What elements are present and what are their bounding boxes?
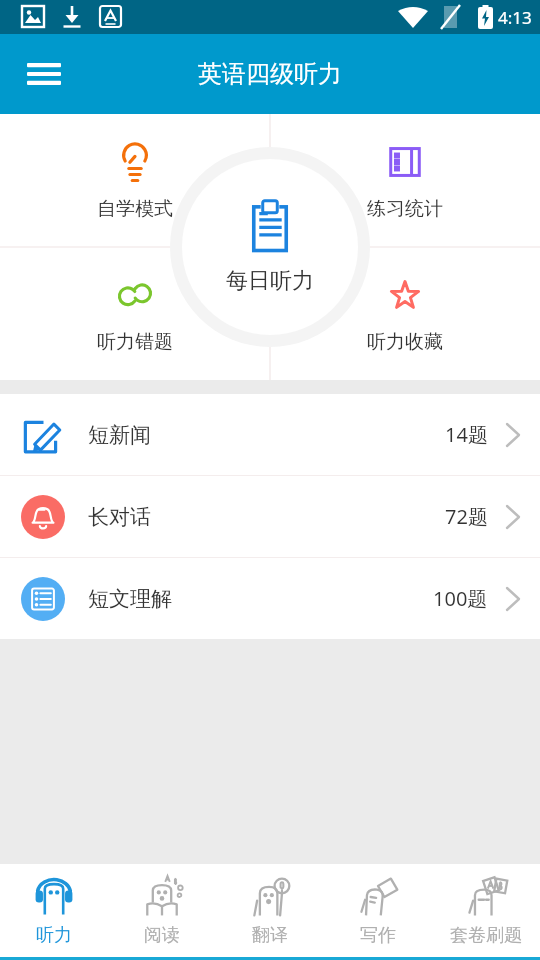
staticText: 英语四级听力	[198, 59, 342, 89]
button[interactable]: 阅读	[108, 864, 216, 957]
staticText: 长对话	[88, 504, 151, 530]
staticText: 自学模式	[97, 197, 173, 221]
staticText: 套卷刷题	[450, 924, 522, 947]
staticText: 听力	[36, 924, 72, 947]
button[interactable]: 自学模式	[0, 114, 270, 247]
button[interactable]: 听力错题	[0, 247, 270, 380]
button[interactable]: 听力	[0, 864, 108, 957]
staticText: 100题	[433, 585, 488, 612]
button[interactable]: 练习统计	[270, 114, 540, 247]
button[interactable]: 短文理解	[0, 558, 540, 639]
button[interactable]: 每日听力	[170, 147, 370, 347]
staticText: 每日听力	[226, 267, 314, 295]
staticText: 4:13	[498, 6, 532, 29]
button[interactable]: 写作	[324, 864, 432, 957]
staticText: 72题	[445, 503, 488, 530]
staticText: 翻译	[252, 924, 288, 947]
staticText: 14题	[445, 421, 488, 448]
staticText: 练习统计	[367, 197, 443, 221]
button[interactable]: 长对话	[0, 476, 540, 557]
staticText: 听力收藏	[367, 330, 443, 354]
staticText: 阅读	[144, 924, 180, 947]
staticText: 短新闻	[88, 422, 151, 448]
button[interactable]: 短新闻	[0, 394, 540, 475]
button[interactable]: 套卷刷题	[432, 864, 540, 957]
staticText: 写作	[360, 924, 396, 947]
staticText: 听力错题	[97, 330, 173, 354]
button[interactable]: Menu	[16, 46, 72, 102]
button[interactable]: 听力收藏	[270, 247, 540, 380]
staticText: 短文理解	[88, 586, 172, 612]
button[interactable]: 翻译	[216, 864, 324, 957]
